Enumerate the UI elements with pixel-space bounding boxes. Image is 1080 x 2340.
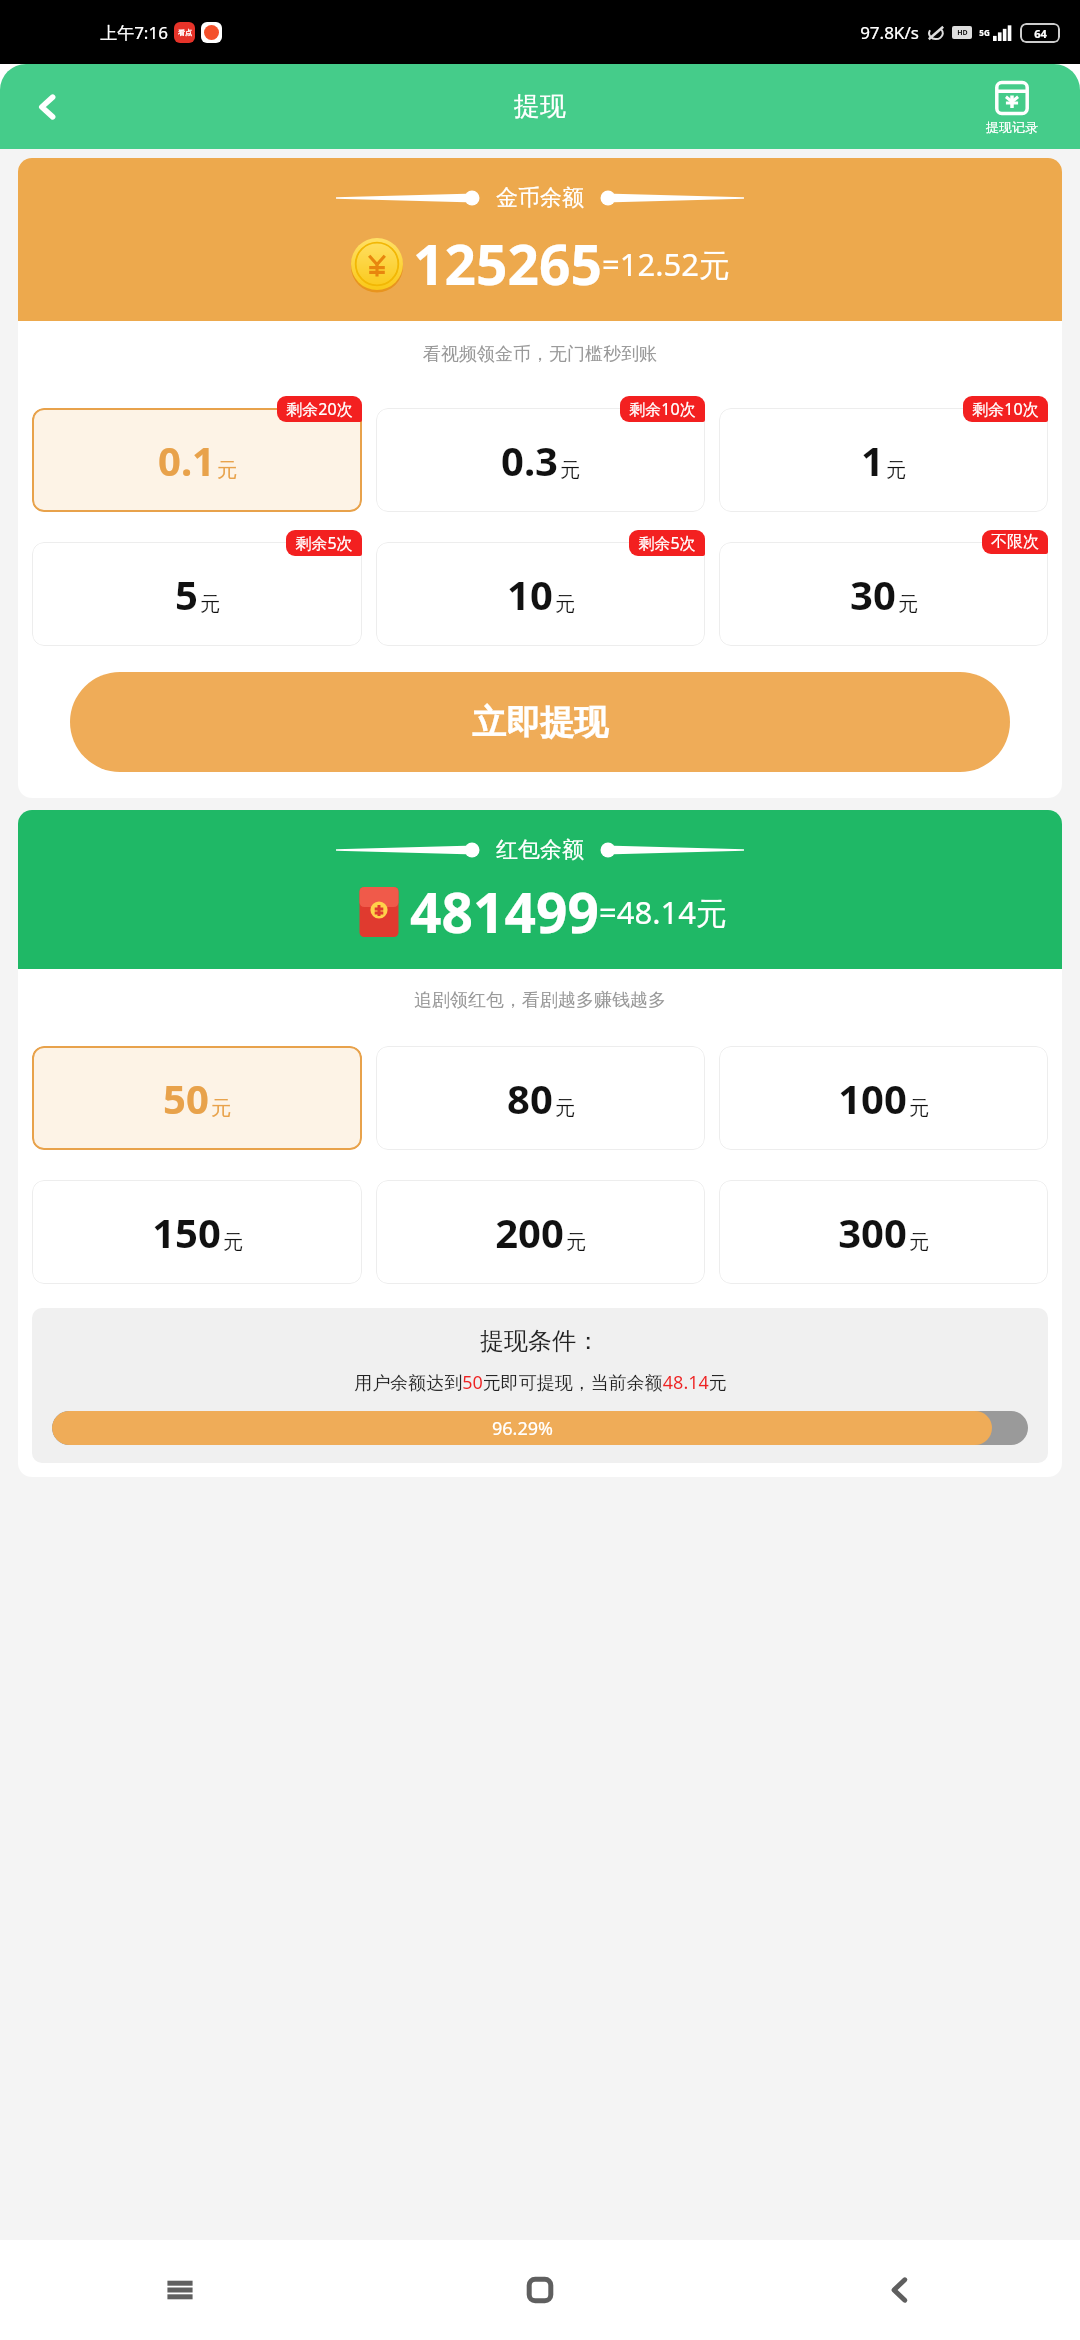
staticText: 80: [507, 1071, 553, 1125]
staticText: 1: [861, 433, 884, 487]
staticText: 100: [838, 1071, 907, 1125]
staticText: 剩余5次: [295, 532, 353, 554]
staticText: 5G: [979, 27, 990, 38]
button[interactable]: 返回: [720, 2240, 1080, 2340]
staticText: 97.8K/s: [860, 21, 919, 44]
button[interactable]: 50: [32, 1046, 362, 1150]
staticText: 元: [223, 1230, 243, 1255]
staticText: 0.3: [501, 433, 558, 487]
button[interactable]: 150: [32, 1180, 362, 1284]
staticText: 元: [200, 592, 220, 617]
staticText: =12.52元: [602, 243, 730, 285]
staticText: 元: [555, 1096, 575, 1121]
button[interactable]: 30: [719, 542, 1048, 646]
staticText: 元: [909, 1096, 929, 1121]
staticText: HD: [957, 28, 968, 38]
button[interactable]: 300: [719, 1180, 1048, 1284]
staticText: 200: [495, 1205, 564, 1259]
staticText: 看视频领金币，无门槛秒到账: [423, 343, 657, 366]
staticText: 元: [886, 458, 906, 483]
staticText: 金币余额: [496, 184, 584, 212]
button[interactable]: 立即提现: [70, 672, 1010, 772]
staticText: 看点: [178, 28, 192, 37]
staticText: 立即提现: [472, 701, 608, 744]
staticText: 元: [211, 1096, 231, 1121]
button[interactable]: 0.1: [32, 408, 362, 512]
staticText: 元: [898, 592, 918, 617]
staticText: 125265: [413, 226, 602, 301]
staticText: 64: [1034, 26, 1047, 41]
staticText: 用户余额达到50元即可提现，当前余额48.14元: [354, 1370, 727, 1395]
staticText: =48.14元: [599, 891, 727, 933]
staticText: 96.29%: [492, 1416, 553, 1441]
staticText: 481499: [410, 874, 599, 949]
staticText: 0.1: [158, 433, 215, 487]
button[interactable]: 200: [376, 1180, 705, 1284]
button[interactable]: 5: [32, 542, 362, 646]
button[interactable]: 100: [719, 1046, 1048, 1150]
button[interactable]: 1: [719, 408, 1048, 512]
staticText: 300: [838, 1205, 907, 1259]
staticText: 剩余5次: [638, 532, 696, 554]
staticText: 剩余10次: [629, 398, 696, 420]
staticText: 150: [152, 1205, 221, 1259]
staticText: 红包余额: [496, 836, 584, 864]
button[interactable]: 提现记录: [959, 78, 1064, 135]
staticText: 不限次: [991, 532, 1039, 552]
button[interactable]: 10: [376, 542, 705, 646]
staticText: 元: [217, 458, 237, 483]
staticText: 提现条件：: [480, 1326, 600, 1356]
staticText: 10: [507, 567, 553, 621]
staticText: 元: [555, 592, 575, 617]
staticText: 元: [560, 458, 580, 483]
button[interactable]: 主屏幕: [360, 2240, 720, 2340]
staticText: 元: [909, 1230, 929, 1255]
staticText: 提现记录: [986, 119, 1038, 135]
button[interactable]: 返回: [20, 79, 76, 135]
staticText: 剩余20次: [286, 398, 353, 420]
staticText: 5: [175, 567, 198, 621]
staticText: 提现: [514, 90, 566, 123]
button[interactable]: 最近任务: [0, 2240, 360, 2340]
staticText: 50: [163, 1071, 209, 1125]
staticText: 30: [850, 567, 896, 621]
staticText: 上午7:16: [100, 21, 168, 44]
button[interactable]: 80: [376, 1046, 705, 1150]
staticText: 追剧领红包，看剧越多赚钱越多: [414, 989, 666, 1012]
staticText: 元: [566, 1230, 586, 1255]
button[interactable]: 0.3: [376, 408, 705, 512]
staticText: 剩余10次: [972, 398, 1039, 420]
